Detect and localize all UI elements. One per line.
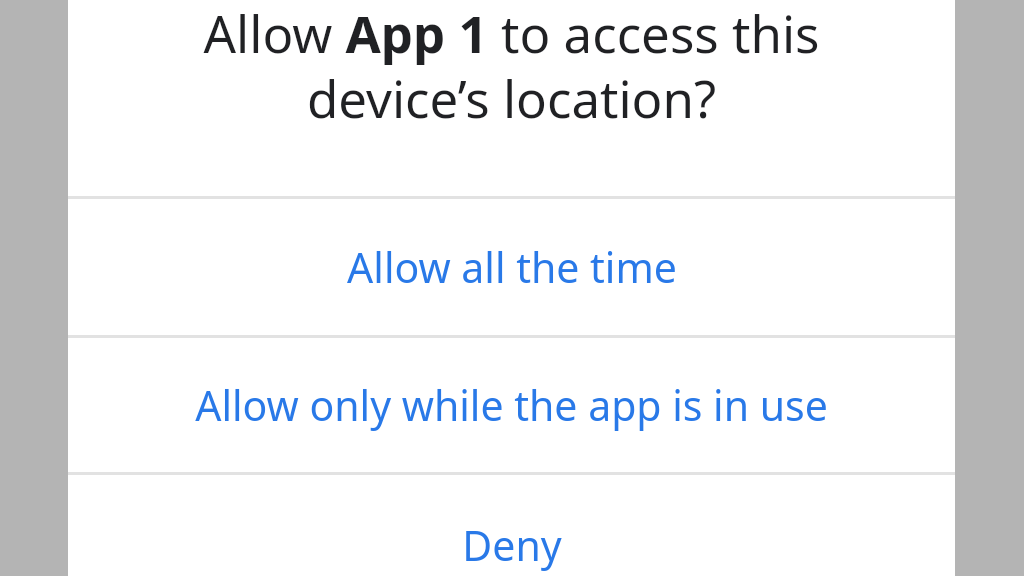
button[interactable]: Allow only while the app is in use [68,338,955,472]
staticText: Allow App 1 to access this device’s loca… [128,0,895,133]
button[interactable]: Allow all the time [68,199,955,335]
staticText: Deny [462,517,562,573]
staticText: Allow only while the app is in use [195,377,828,433]
staticText: Allow all the time [347,239,677,295]
button[interactable]: Deny [68,475,955,576]
